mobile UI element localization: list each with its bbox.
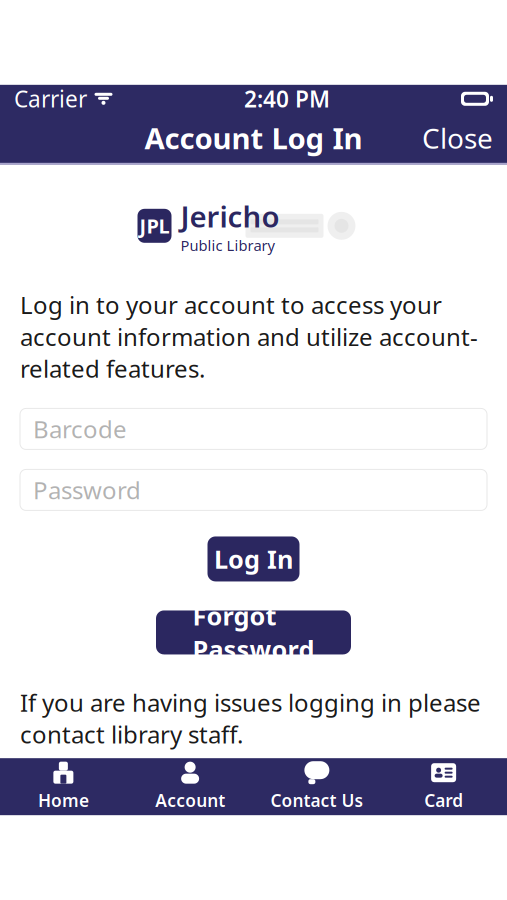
button[interactable]: Contact Us bbox=[253, 758, 380, 815]
staticText: 2:40 PM bbox=[244, 84, 330, 114]
staticText: Account Log In bbox=[144, 118, 362, 157]
staticText: Forgot Password bbox=[192, 599, 314, 666]
button[interactable]: Password bbox=[20, 469, 487, 510]
button[interactable]: Account bbox=[127, 758, 254, 815]
staticText: Jericho bbox=[180, 197, 279, 236]
staticText: Log In bbox=[214, 542, 293, 576]
button[interactable]: Home bbox=[0, 758, 127, 815]
button[interactable]: Card bbox=[380, 758, 507, 815]
button[interactable]: Forgot Password bbox=[156, 610, 351, 654]
staticText: Home bbox=[38, 789, 89, 812]
staticText: Contact Us bbox=[270, 789, 363, 812]
button[interactable]: Barcode bbox=[20, 408, 487, 449]
staticText: Carrier bbox=[14, 84, 87, 114]
staticText: If you are having issues logging in plea… bbox=[20, 686, 481, 750]
staticText: Password bbox=[33, 474, 141, 506]
staticText: JPL bbox=[139, 212, 169, 239]
staticText: Close bbox=[422, 119, 493, 156]
staticText: Card bbox=[424, 789, 463, 812]
staticText: Account bbox=[155, 789, 225, 812]
button[interactable]: Log In bbox=[207, 536, 299, 581]
staticText: Log in to your account to access your ac… bbox=[20, 289, 478, 384]
staticText: Barcode bbox=[33, 413, 127, 445]
staticText: Public Library bbox=[180, 236, 274, 255]
button[interactable]: Close bbox=[412, 110, 503, 165]
